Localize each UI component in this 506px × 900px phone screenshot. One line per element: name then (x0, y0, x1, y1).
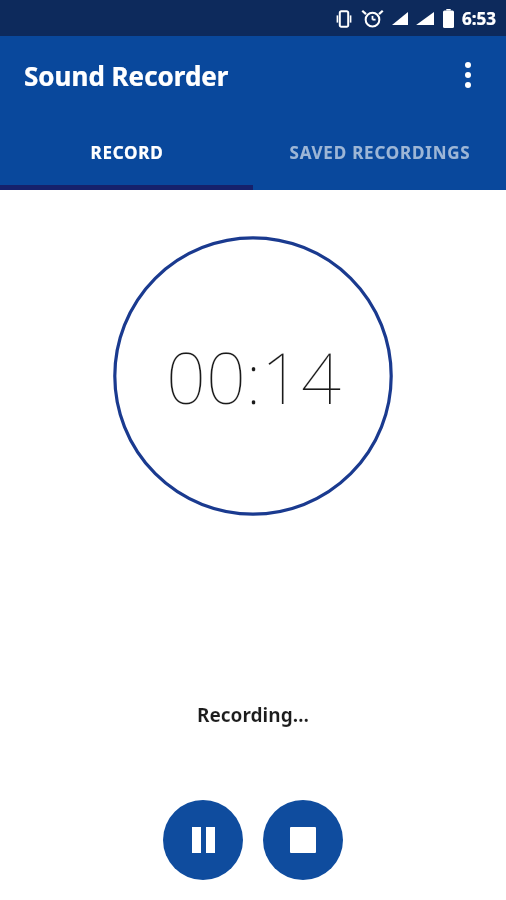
button[interactable]: RECORD (0, 114, 253, 190)
staticText: 00:14 (166, 329, 341, 424)
button[interactable]: SAVED RECORDINGS (253, 114, 506, 190)
staticText: 6:53 (462, 7, 496, 30)
button[interactable]: Stop recording (263, 800, 343, 880)
staticText: Recording… (197, 702, 309, 728)
button[interactable]: More options (444, 51, 492, 99)
staticText: RECORD (90, 141, 164, 164)
button[interactable]: Pause recording (163, 800, 243, 880)
staticText: SAVED RECORDINGS (289, 141, 471, 164)
staticText: Sound Recorder (24, 58, 229, 93)
